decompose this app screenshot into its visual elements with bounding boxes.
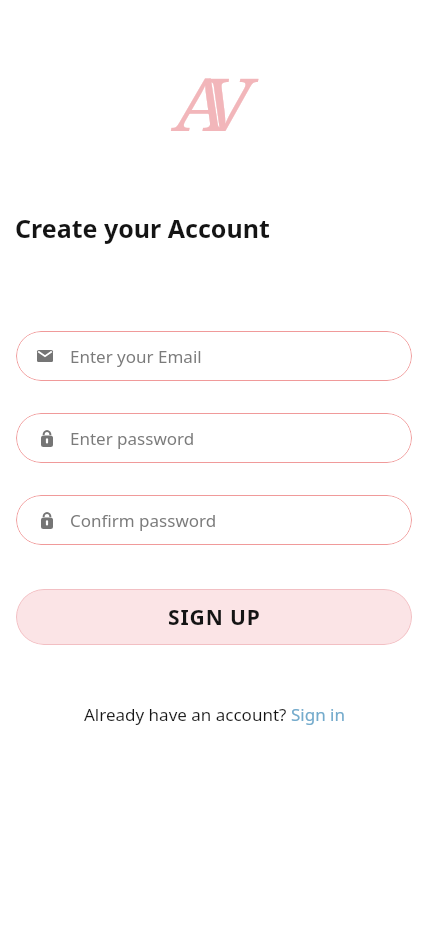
button[interactable]: Sign in bbox=[291, 703, 345, 726]
staticText: Enter password bbox=[70, 427, 195, 450]
button[interactable]: SIGN UP bbox=[16, 589, 412, 645]
staticText: Create your Account bbox=[15, 211, 270, 245]
staticText: SIGN UP bbox=[168, 603, 261, 632]
button[interactable]: Confirm password bbox=[16, 495, 412, 545]
staticText: Enter your Email bbox=[70, 345, 202, 368]
staticText: Confirm password bbox=[70, 509, 217, 532]
button[interactable]: Enter password bbox=[16, 413, 412, 463]
staticText: Already have an account? bbox=[84, 703, 291, 726]
staticText: AV bbox=[175, 53, 234, 152]
button[interactable]: Enter your Email bbox=[16, 331, 412, 381]
